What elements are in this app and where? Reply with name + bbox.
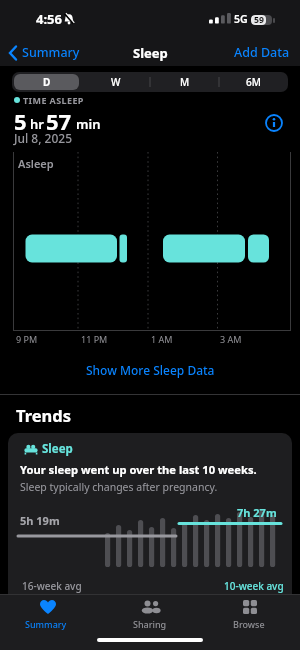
button[interactable]: 6M (219, 72, 288, 92)
staticText: Jul 8, 2025 (14, 130, 73, 146)
button[interactable]: D (12, 72, 81, 92)
button[interactable]: Sharing (120, 596, 180, 634)
staticText: 7h 27m (237, 505, 277, 520)
staticText: 6M (246, 75, 261, 89)
button[interactable]: Add Data (233, 43, 291, 62)
staticText: 57 (46, 106, 72, 136)
staticText: 9 PM (16, 333, 38, 345)
staticText: Sleep typically changes after pregnancy. (20, 480, 218, 494)
staticText: Summary (22, 44, 80, 61)
staticText: 4:56 (36, 10, 62, 28)
staticText: 16-week avg (22, 579, 82, 593)
button[interactable]: W (81, 72, 150, 92)
staticText: Sleep (133, 44, 168, 62)
button[interactable]: Summary (8, 44, 80, 61)
staticText: min (76, 115, 101, 133)
staticText: TIME ASLEEP (23, 94, 84, 106)
staticText: 11 PM (81, 333, 108, 345)
button[interactable]: Browse (220, 596, 280, 634)
staticText: hr (30, 115, 44, 133)
staticText: 5h 19m (20, 513, 60, 528)
button[interactable]: M (150, 72, 219, 92)
staticText: Add Data (234, 44, 290, 61)
staticText: 59 (254, 14, 264, 26)
staticText: Summary (25, 618, 67, 630)
staticText: Trends (16, 404, 72, 426)
staticText: Sleep (42, 441, 73, 457)
staticText: 5G (234, 12, 248, 26)
button[interactable]: Sleep (8, 433, 292, 614)
staticText: 3 AM (220, 333, 242, 345)
staticText: 10-week avg (224, 579, 284, 593)
staticText: Sharing (133, 618, 167, 630)
staticText: 1 AM (151, 333, 173, 345)
staticText: Asleep (18, 156, 54, 171)
staticText: M (180, 75, 190, 89)
staticText: Your sleep went up over the last 10 week… (20, 462, 257, 477)
button[interactable] (14, 74, 79, 90)
staticText: 5 (14, 106, 27, 136)
staticText: Show More Sleep Data (86, 362, 215, 378)
staticText: Browse (233, 618, 265, 630)
button[interactable]: Show More Sleep Data (0, 360, 300, 380)
button[interactable] (264, 113, 284, 133)
staticText: D (43, 75, 51, 89)
staticText: W (111, 75, 121, 89)
button[interactable]: Summary (18, 596, 78, 634)
